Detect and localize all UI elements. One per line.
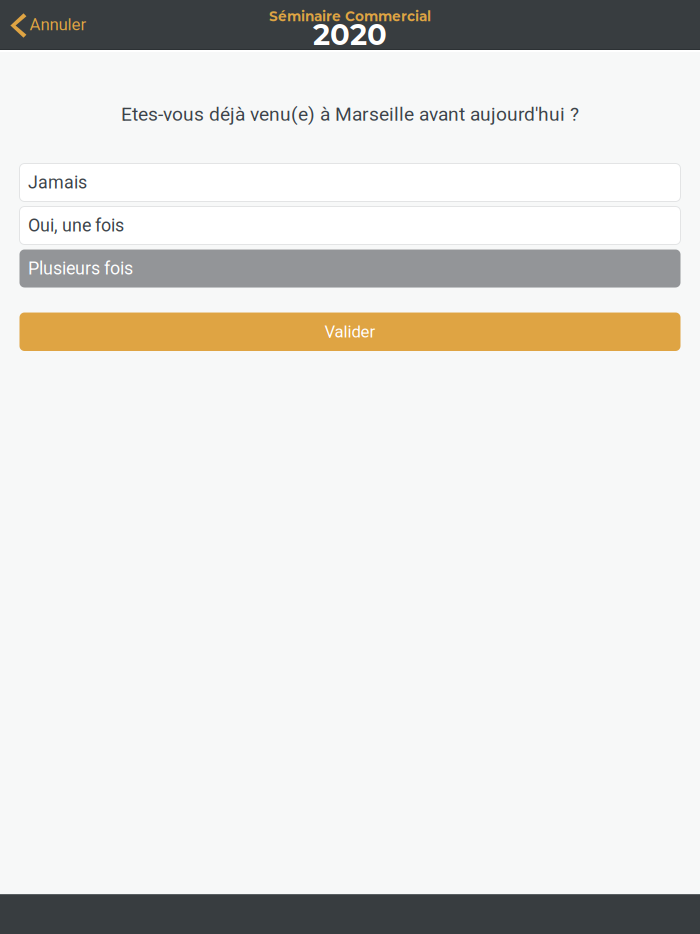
staticText: Valider: [324, 322, 375, 342]
staticText: Etes-vous déjà venu(e) à Marseille avant…: [121, 103, 579, 125]
staticText: Séminaire Commercial: [269, 8, 431, 25]
button[interactable]: Valider: [19, 312, 680, 351]
staticText: Annuler: [29, 15, 86, 34]
button[interactable]: Plusieurs fois: [19, 249, 680, 287]
button[interactable]: Oui, une fois: [19, 206, 680, 244]
staticText: Jamais: [28, 172, 87, 193]
button[interactable]: Jamais: [19, 163, 680, 201]
staticText: 2020: [313, 17, 387, 52]
button[interactable]: Annuler: [0, 0, 94, 49]
staticText: Oui, une fois: [28, 215, 124, 236]
staticText: Plusieurs fois: [28, 258, 133, 279]
